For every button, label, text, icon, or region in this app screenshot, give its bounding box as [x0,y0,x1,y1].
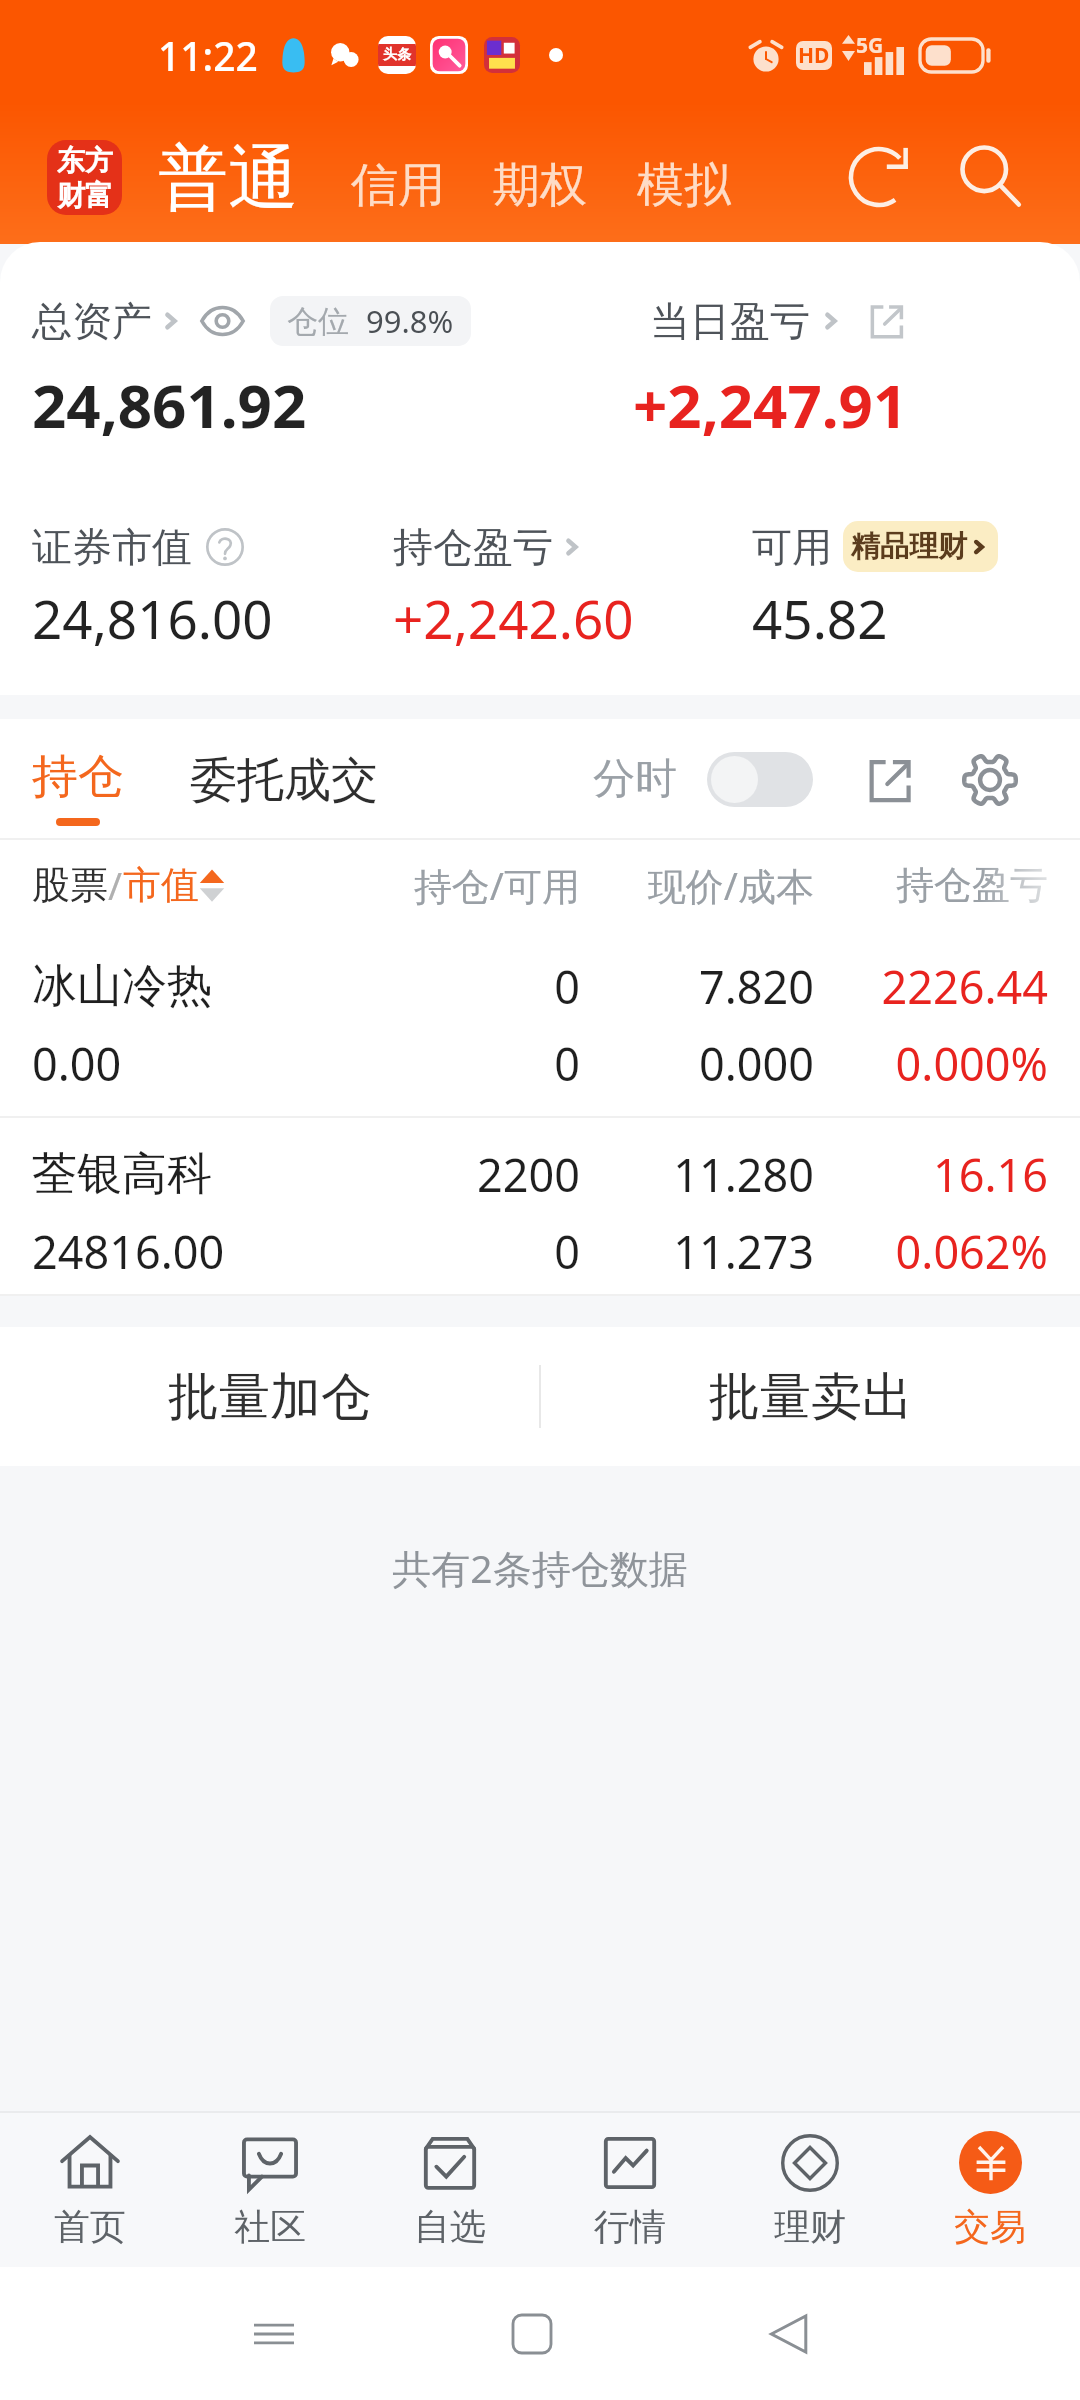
button[interactable]: 荃银高科 [0,1118,1080,1296]
staticText: 总资产 [32,296,152,346]
button[interactable]: Home [497,2299,567,2369]
button[interactable]: 行情 [540,2113,720,2267]
button[interactable]: 持仓 [32,741,124,819]
staticText: 当日盈亏 [650,296,810,346]
staticText: 0 [346,956,580,1017]
staticText: 0 [346,1221,580,1282]
button[interactable]: 冰山冷热 [0,930,1080,1118]
button[interactable]: 首页 [0,2113,180,2267]
button[interactable]: 信用 [351,148,445,207]
button[interactable]: Refresh [836,133,924,221]
button[interactable]: 批量卖出 [541,1327,1080,1466]
staticText: 持仓 [32,748,124,806]
staticText: 45.82 [752,582,888,654]
staticText: 24,861.92 [32,364,307,446]
staticText: 0 [346,1033,580,1094]
staticText: 信用 [351,156,445,215]
staticText: 批量卖出 [709,1365,913,1429]
button[interactable]: 自选 [360,2113,540,2267]
staticText: 2200 [346,1144,580,1205]
staticText: 财富 [57,178,113,213]
staticText: 市值 [123,861,199,909]
button[interactable]: 委托成交 [190,750,378,809]
button[interactable]: 分时 [593,752,813,807]
staticText: 持仓/可用 [346,859,580,911]
button[interactable]: Recents [239,2299,309,2369]
staticText: 16.16 [814,1144,1048,1205]
staticText: 首页 [54,2204,126,2249]
button[interactable]: 持仓盈亏 [393,522,752,572]
staticText: 模拟 [637,156,731,215]
staticText: 荃银高科 [32,1146,346,1203]
staticText: 0.062% [814,1221,1048,1282]
staticText: 24,816.00 [32,582,393,654]
staticText: 0.00 [32,1033,346,1094]
staticText: 社区 [234,2204,306,2249]
staticText: 普通 [158,135,298,223]
button[interactable]: 模拟 [637,148,731,207]
staticText: HD [798,41,830,70]
staticText: 持仓盈亏 [393,522,553,572]
staticText: 东方 [57,143,113,178]
staticText: 分时 [593,753,677,806]
button[interactable]: 批量加仓 [0,1327,539,1466]
button[interactable]: 普通 [158,133,298,221]
button[interactable]: Settings [950,740,1030,820]
staticText: / [108,859,123,911]
staticText: 2226.44 [814,956,1048,1017]
staticText: 7.820 [580,956,814,1017]
staticText: 期权 [493,156,587,215]
staticText: 委托成交 [190,751,378,810]
button[interactable]: 期权 [493,148,587,207]
button[interactable]: 理财 [720,2113,900,2267]
staticText: 理财 [774,2204,846,2249]
staticText: +2,242.60 [393,582,752,654]
staticText: 行情 [594,2204,666,2249]
staticText: 现价/成本 [580,859,814,911]
button[interactable]: Search [946,133,1034,221]
staticText: 0.000 [580,1033,814,1094]
staticText: 冰山冷热 [32,958,346,1015]
button[interactable]: East Money logo [47,140,122,215]
staticText: 自选 [414,2204,486,2249]
staticText: 11.280 [580,1144,814,1205]
staticText: +2,247.91 [633,364,908,446]
button[interactable]: 社区 [180,2113,360,2267]
staticText: 5G [856,31,884,60]
staticText: 头条 [383,46,411,64]
button[interactable]: 精品理财 [843,521,998,572]
button[interactable]: 仓位 [270,296,471,346]
button[interactable]: 交易 [900,2113,1080,2267]
button[interactable]: 当日盈亏 [650,296,908,346]
staticText: 仓位 [287,302,349,341]
button[interactable]: Back [754,2299,824,2369]
staticText: 可用 [752,522,832,572]
staticText: 11.273 [580,1221,814,1282]
staticText: 批量加仓 [168,1365,372,1429]
staticText: 99.8% [366,300,454,342]
button[interactable]: 总资产 [32,296,186,346]
staticText: 11:22 [158,29,258,82]
staticText: 精品理财 [851,528,967,565]
staticText: 24816.00 [32,1221,346,1282]
button[interactable]: Hide balance [200,301,245,341]
button[interactable]: Share [850,741,928,819]
staticText: 股票 [32,861,108,909]
staticText: 共有2条持仓数据 [0,1541,1080,1594]
staticText: 0.000% [814,1033,1048,1094]
staticText: 持仓盈亏 [814,861,1048,909]
staticText: 交易 [954,2204,1026,2249]
staticText: 证券市值 [32,522,192,572]
